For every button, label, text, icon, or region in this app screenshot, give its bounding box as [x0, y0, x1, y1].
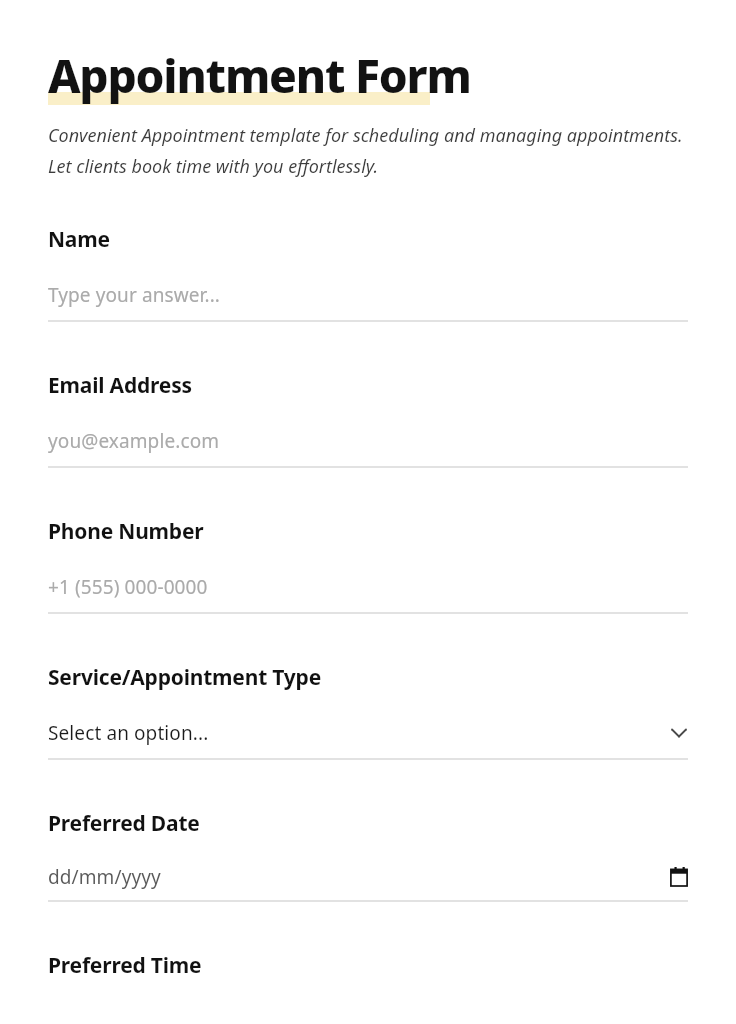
button[interactable]: Type your answer... [48, 282, 688, 322]
staticText: Select an option... [48, 720, 209, 746]
button[interactable]: you@example.com [48, 428, 688, 468]
staticText: Name [48, 225, 110, 254]
staticText: Appointment Form [48, 44, 471, 107]
staticText: Phone Number [48, 517, 204, 546]
other: Open service options [670, 727, 688, 739]
button[interactable]: Select an option... [48, 720, 688, 760]
staticText: Service/Appointment Type [48, 663, 322, 692]
staticText: Type your answer... [48, 282, 221, 308]
staticText: Email Address [48, 371, 192, 400]
button[interactable]: dd/mm/yyyy [48, 864, 688, 902]
staticText: +1 (555) 000-0000 [48, 574, 208, 600]
staticText: Preferred Date [48, 809, 200, 838]
button[interactable]: +1 (555) 000-0000 [48, 574, 688, 614]
staticText: dd/mm/yyyy [48, 864, 161, 890]
staticText: Convenient Appointment template for sche… [48, 123, 688, 178]
other: Pick a date [670, 867, 688, 887]
staticText: Preferred Time [48, 951, 202, 980]
staticText: you@example.com [48, 428, 220, 454]
